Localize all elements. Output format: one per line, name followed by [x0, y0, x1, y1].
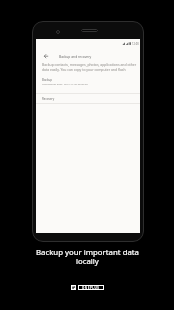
staticText: ONEPLUS [82, 286, 100, 290]
staticText: Backup and recovery [59, 54, 92, 58]
staticText: locally [76, 256, 99, 267]
staticText: data easily. You can copy to your comput… [42, 67, 126, 72]
button[interactable]: ONEPLUS [71, 285, 104, 290]
staticText: Last backup time : 2017-11-25 05:06:28 [42, 82, 88, 85]
button[interactable] [40, 50, 51, 61]
staticText: Backup your important data [36, 247, 139, 258]
button[interactable] [36, 94, 140, 103]
staticText: Backup contacts, messages, photos, appli… [42, 62, 144, 67]
staticText: Backup [42, 78, 52, 82]
staticText: Recovery [42, 97, 55, 101]
button[interactable] [36, 74, 140, 93]
staticText: 12:00 [132, 42, 139, 46]
